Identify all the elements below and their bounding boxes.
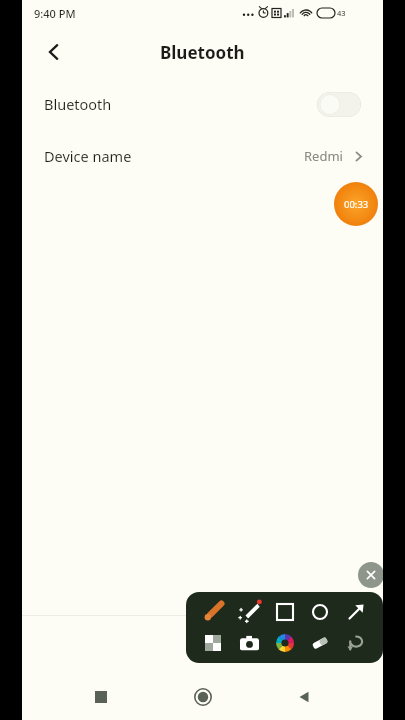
button[interactable]: Magic pen <box>234 597 264 627</box>
staticText: Device name <box>44 146 132 166</box>
button[interactable]: Recording timer <box>334 182 378 226</box>
button[interactable]: Bluetooth <box>22 78 383 130</box>
staticText: Bluetooth <box>44 94 112 114</box>
staticText: 00:33 <box>344 198 369 211</box>
button[interactable]: Back <box>34 32 74 72</box>
button[interactable]: Undo <box>341 628 371 658</box>
button[interactable]: Brush <box>198 597 228 627</box>
button[interactable]: Back <box>282 675 326 719</box>
staticText: Redmi <box>304 147 343 165</box>
button[interactable]: Camera <box>234 628 264 658</box>
button[interactable]: Arrow <box>341 597 371 627</box>
staticText: Bluetooth <box>160 41 245 64</box>
button[interactable]: Close toolbar <box>358 562 384 588</box>
staticText: 43 <box>337 8 346 18</box>
button[interactable]: Bluetooth toggle <box>317 92 361 117</box>
button[interactable]: Ellipse <box>305 597 335 627</box>
button[interactable]: Mosaic <box>198 628 228 658</box>
button[interactable]: Device name <box>22 130 383 182</box>
button[interactable]: Recents <box>79 675 123 719</box>
staticText: 9:40 PM <box>34 6 76 21</box>
button[interactable]: Home <box>181 675 225 719</box>
button[interactable]: Eraser <box>305 628 335 658</box>
button[interactable]: Rectangle <box>270 597 300 627</box>
button[interactable]: Color <box>270 628 300 658</box>
